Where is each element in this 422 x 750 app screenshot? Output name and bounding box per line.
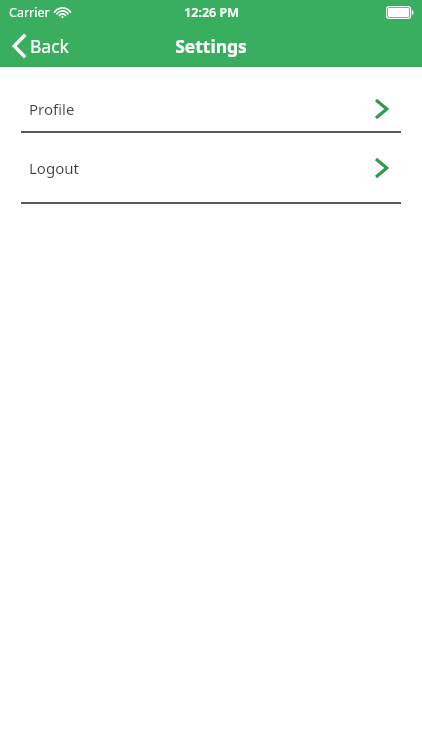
staticText: Settings <box>175 34 247 58</box>
other: Wi-Fi <box>55 7 70 18</box>
other: Battery full <box>386 6 414 19</box>
other: Open Profile <box>376 101 388 117</box>
staticText: Back <box>30 34 69 58</box>
button[interactable]: Profile <box>0 87 422 133</box>
button[interactable]: Back <box>0 24 81 67</box>
other: Open Logout <box>376 160 388 176</box>
staticText: Carrier <box>9 4 50 21</box>
staticText: Logout <box>29 158 79 178</box>
button[interactable]: Logout <box>0 133 422 204</box>
staticText: Profile <box>29 99 75 119</box>
staticText: 12:26 PM <box>184 4 239 21</box>
